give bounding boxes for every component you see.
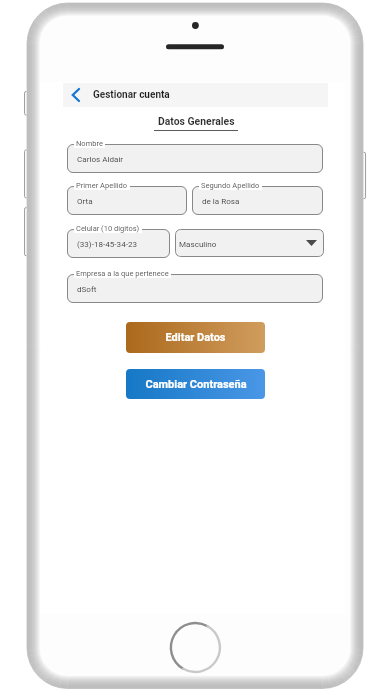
staticText: Primer Apellido	[76, 181, 128, 190]
button[interactable]	[67, 274, 323, 303]
button[interactable]	[192, 186, 323, 215]
button[interactable]	[67, 229, 170, 258]
staticText: Carlos Aldair	[77, 154, 124, 163]
staticText: Editar Datos	[165, 331, 226, 344]
staticText: Gestionar cuenta	[93, 89, 170, 101]
staticText: Celular (10 digitos)	[76, 224, 140, 233]
staticText: de la Rosa	[202, 196, 240, 205]
staticText: Datos Generales	[158, 115, 235, 127]
button[interactable]: Back	[65, 85, 85, 105]
staticText: Segundo Apellido	[201, 181, 260, 190]
button[interactable]	[67, 144, 323, 173]
button[interactable]	[67, 186, 187, 215]
staticText: Nombre	[76, 139, 103, 148]
button[interactable]: Editar Datos	[126, 322, 265, 353]
staticText: Empresa a la que pertenece	[76, 269, 169, 278]
staticText: Cambiar Contraseña	[145, 378, 247, 391]
button[interactable]: Cambiar Contraseña	[126, 369, 265, 399]
staticText: (33)-18-45-34-23	[77, 239, 138, 248]
staticText: dSoft	[77, 284, 97, 293]
button[interactable]: Masculino	[175, 229, 324, 257]
staticText: Orta	[77, 196, 93, 205]
staticText: Masculino	[179, 239, 217, 248]
button[interactable]: Datos Generales	[153, 115, 238, 133]
